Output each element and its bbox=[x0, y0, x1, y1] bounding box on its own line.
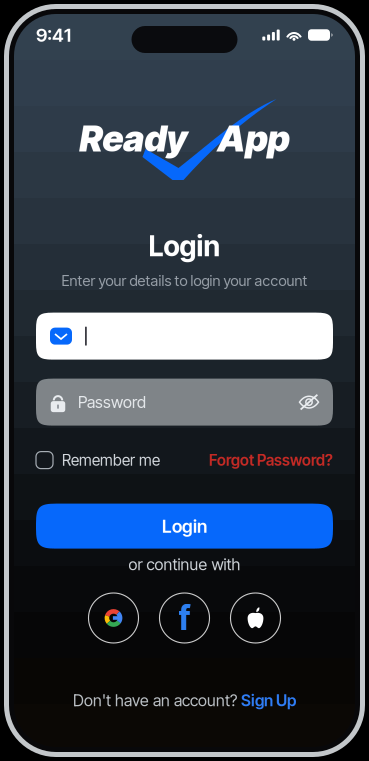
button[interactable]: Show password bbox=[298, 393, 320, 411]
button[interactable]: Forgot Password? bbox=[209, 451, 333, 469]
button[interactable]: Login bbox=[36, 504, 333, 549]
staticText: Don't have an account? bbox=[73, 691, 237, 710]
staticText: 9:41 bbox=[36, 24, 71, 46]
button[interactable]: Remember me bbox=[36, 451, 160, 469]
button[interactable]: Sign in with Google bbox=[88, 593, 138, 643]
staticText: Ready bbox=[79, 117, 187, 160]
staticText: Enter your details to login your account bbox=[61, 272, 307, 290]
staticText: f bbox=[178, 598, 190, 638]
staticText: Sign Up bbox=[241, 691, 296, 710]
button[interactable]: Don't have an account? bbox=[73, 691, 296, 710]
button[interactable]: Sign in with Apple bbox=[230, 593, 280, 643]
staticText: Remember me bbox=[62, 451, 160, 469]
staticText: Login bbox=[162, 515, 207, 537]
staticText: or continue with bbox=[128, 555, 240, 574]
staticText: Password bbox=[78, 392, 146, 412]
staticText: Forgot Password? bbox=[209, 451, 333, 469]
staticText: App bbox=[217, 117, 289, 160]
staticText: Login bbox=[148, 229, 220, 263]
button[interactable]: Sign in with Facebook bbox=[159, 593, 209, 643]
